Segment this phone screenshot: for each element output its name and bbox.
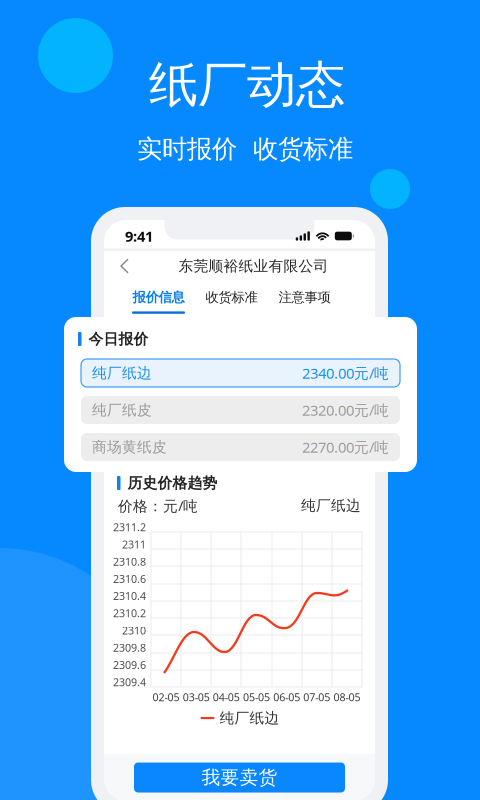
button[interactable]: 商场黄纸皮	[81, 433, 400, 461]
staticText: 2309.4	[113, 675, 146, 689]
staticText: 02-05	[153, 690, 180, 704]
staticText: 06-05	[273, 690, 300, 704]
staticText: 注意事项	[278, 289, 330, 305]
staticText: 2340.00元/吨	[302, 363, 389, 383]
button[interactable]: 注意事项	[278, 281, 331, 319]
button[interactable]: 报价信息	[132, 281, 185, 319]
button[interactable]: 返回	[104, 251, 139, 281]
staticText: 08-05	[333, 690, 360, 704]
staticText: 2311.2	[113, 520, 146, 534]
button[interactable]: 收货标准	[205, 281, 258, 319]
staticText: 2311	[122, 537, 146, 551]
staticText: 纯厂纸边	[219, 709, 279, 727]
staticText: 2310.8	[113, 554, 146, 569]
staticText: 报价信息	[132, 289, 184, 305]
staticText: 03-05	[183, 690, 210, 704]
staticText: 2320.00元/吨	[302, 400, 389, 420]
staticText: 2310.6	[113, 572, 146, 586]
staticText: 纸厂动态	[149, 55, 345, 115]
staticText: 纯厂纸皮	[92, 401, 152, 419]
staticText: 07-05	[303, 690, 330, 704]
staticText: 东莞顺裕纸业有限公司	[178, 257, 328, 275]
staticText: 2270.00元/吨	[302, 437, 389, 457]
staticText: 历史价格趋势	[127, 474, 217, 492]
button[interactable]: 纯厂纸皮	[81, 396, 400, 424]
staticText: 2310.4	[113, 589, 146, 603]
staticText: 2309.6	[113, 658, 146, 672]
staticText: 04-05	[213, 690, 240, 704]
staticText: 9:41	[125, 226, 153, 246]
staticText: 2310	[122, 623, 146, 637]
button[interactable]: 我要卖货	[134, 762, 345, 792]
button[interactable]: 纯厂纸边	[81, 359, 400, 387]
staticText: 实时报价 收货标准	[137, 133, 353, 164]
staticText: 纯厂纸边	[92, 364, 152, 382]
staticText: 2309.8	[113, 641, 146, 655]
staticText: 今日报价	[88, 330, 148, 348]
staticText: 我要卖货	[201, 766, 277, 789]
staticText: 价格：元/吨	[118, 496, 198, 515]
staticText: 收货标准	[205, 289, 257, 305]
staticText: 商场黄纸皮	[92, 438, 167, 456]
staticText: 2310.2	[113, 606, 146, 620]
staticText: 05-05	[243, 690, 270, 704]
staticText: 纯厂纸边	[301, 497, 361, 515]
